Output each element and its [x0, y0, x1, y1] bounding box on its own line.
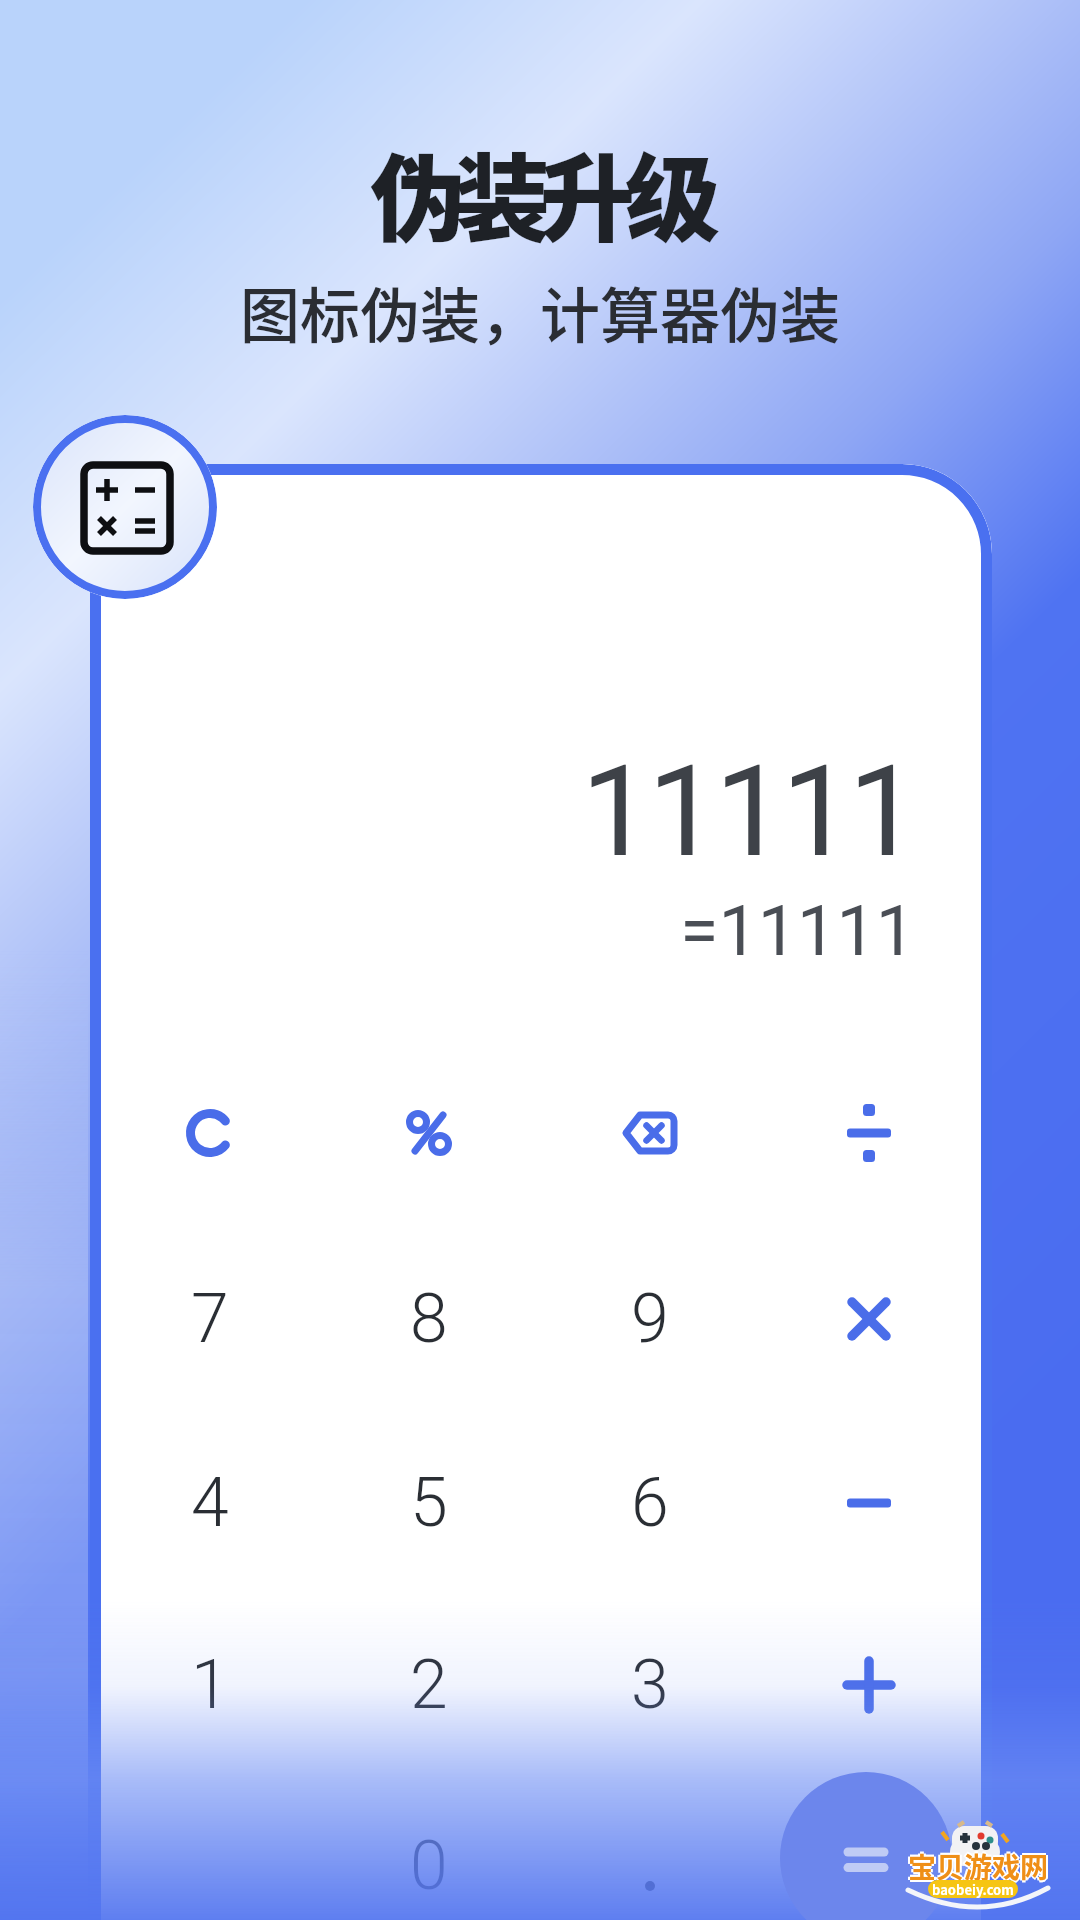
button[interactable]: 4 [135, 1428, 285, 1578]
button[interactable] [575, 1791, 725, 1920]
staticText: =11111 [680, 890, 916, 972]
staticText: 2 [410, 1645, 448, 1725]
button[interactable] [794, 1428, 944, 1578]
button[interactable]: 9 [575, 1244, 725, 1394]
button[interactable]: 7 [135, 1244, 285, 1394]
button[interactable] [575, 1058, 725, 1208]
staticText: 4 [191, 1463, 229, 1543]
button[interactable] [33, 415, 217, 599]
staticText: 图标伪装，计算器伪装 [240, 268, 840, 355]
button[interactable]: 0 [354, 1791, 504, 1920]
staticText: 0 [410, 1826, 448, 1906]
staticText: 宝贝游戏网 [908, 1848, 1049, 1889]
staticText: 5 [410, 1463, 448, 1543]
staticText: 宝贝游戏网 [910, 1846, 1051, 1887]
staticText: 8 [410, 1279, 448, 1359]
button[interactable] [354, 1058, 504, 1208]
staticText: 宝贝游戏网 [908, 1844, 1049, 1885]
button[interactable]: 8 [354, 1244, 504, 1394]
staticText: 9 [631, 1279, 669, 1359]
staticText: 6 [631, 1463, 669, 1543]
staticText: 7 [191, 1279, 229, 1359]
button[interactable]: 5 [354, 1428, 504, 1578]
button[interactable] [780, 1772, 952, 1920]
staticText: 宝贝游戏网 [906, 1846, 1047, 1887]
button[interactable]: 3 [575, 1610, 725, 1760]
button[interactable]: 2 [354, 1610, 504, 1760]
staticText: baobeiy.com [932, 1880, 1014, 1898]
button[interactable] [794, 1244, 944, 1394]
button[interactable]: 6 [575, 1428, 725, 1578]
staticText: 1 [191, 1645, 229, 1725]
button[interactable]: 1 [135, 1610, 285, 1760]
staticText: 宝贝游戏网 [908, 1846, 1049, 1887]
staticText: 伪装升级 [370, 124, 711, 262]
staticText: 11111 [581, 738, 916, 886]
staticText: 3 [631, 1645, 669, 1725]
button[interactable] [135, 1058, 285, 1208]
button[interactable] [794, 1058, 944, 1208]
button[interactable] [794, 1610, 944, 1760]
